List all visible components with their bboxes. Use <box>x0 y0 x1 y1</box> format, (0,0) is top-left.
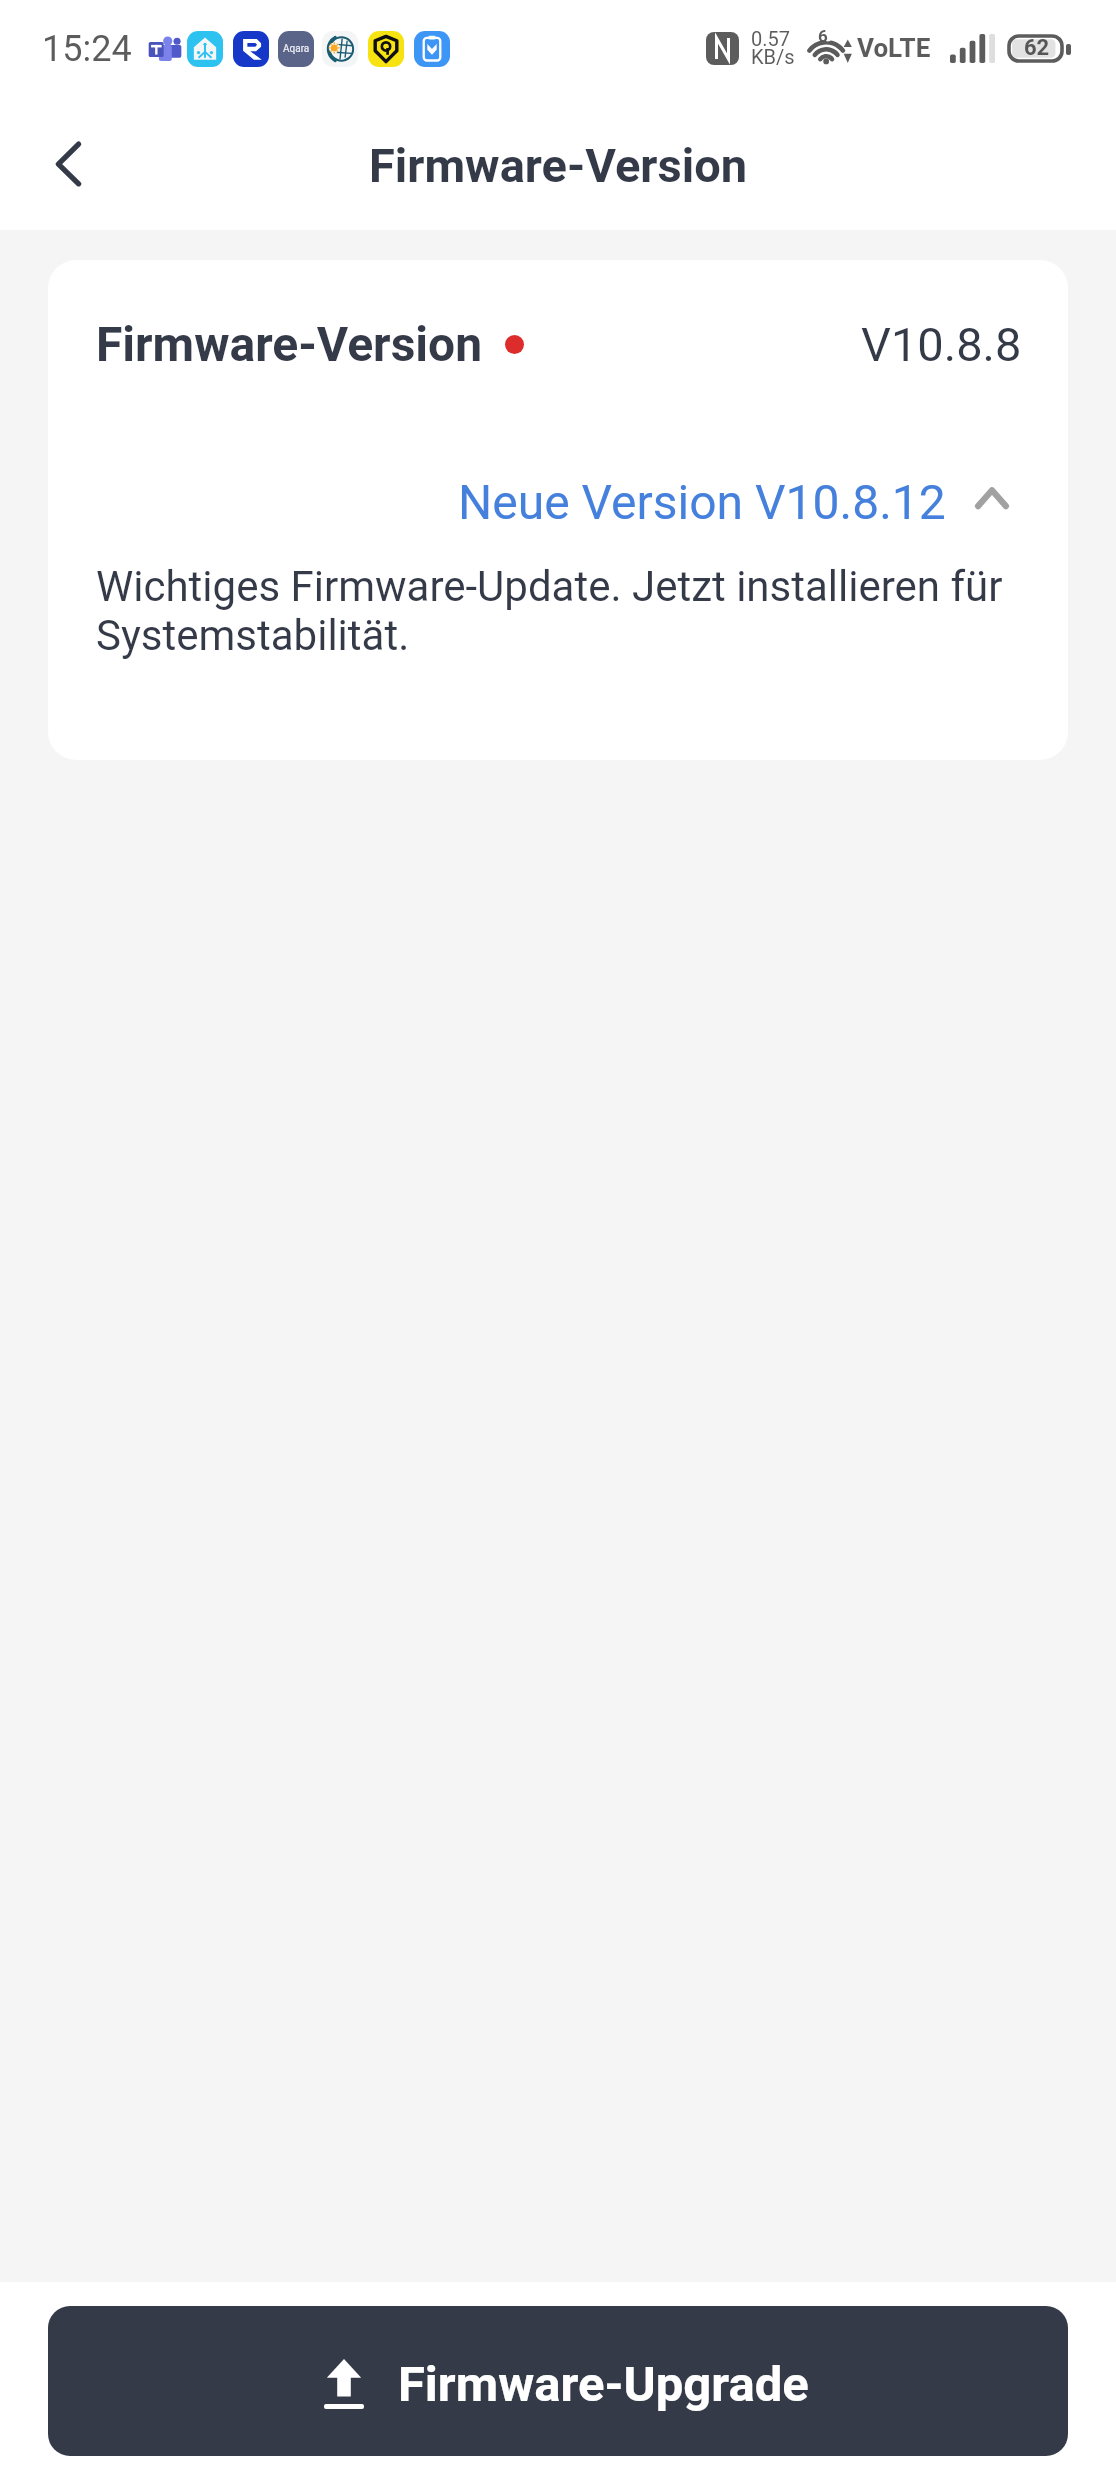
staticText: Wichtiges Firmware-Update. Jetzt install… <box>96 562 1050 660</box>
staticText: V10.8.8 <box>861 317 1022 372</box>
button[interactable]: Back <box>25 121 109 205</box>
staticText: KB/s <box>751 45 795 68</box>
staticText: Aqara <box>283 43 310 55</box>
staticText: VoLTE <box>857 33 931 63</box>
staticText: Neue Version V10.8.12 <box>458 474 946 530</box>
staticText: 0.57 <box>751 27 790 50</box>
staticText: 6 <box>818 26 828 46</box>
staticText: Firmware-Version <box>96 316 483 372</box>
staticText: 62 <box>1024 35 1050 61</box>
staticText: Firmware-Version <box>369 138 748 193</box>
staticText: Firmware-Upgrade <box>398 2356 809 2413</box>
button[interactable]: Neue Version V10.8.12 <box>48 462 1068 542</box>
button[interactable]: Firmware-Upgrade <box>48 2306 1068 2456</box>
staticText: 15:24 <box>42 28 132 70</box>
